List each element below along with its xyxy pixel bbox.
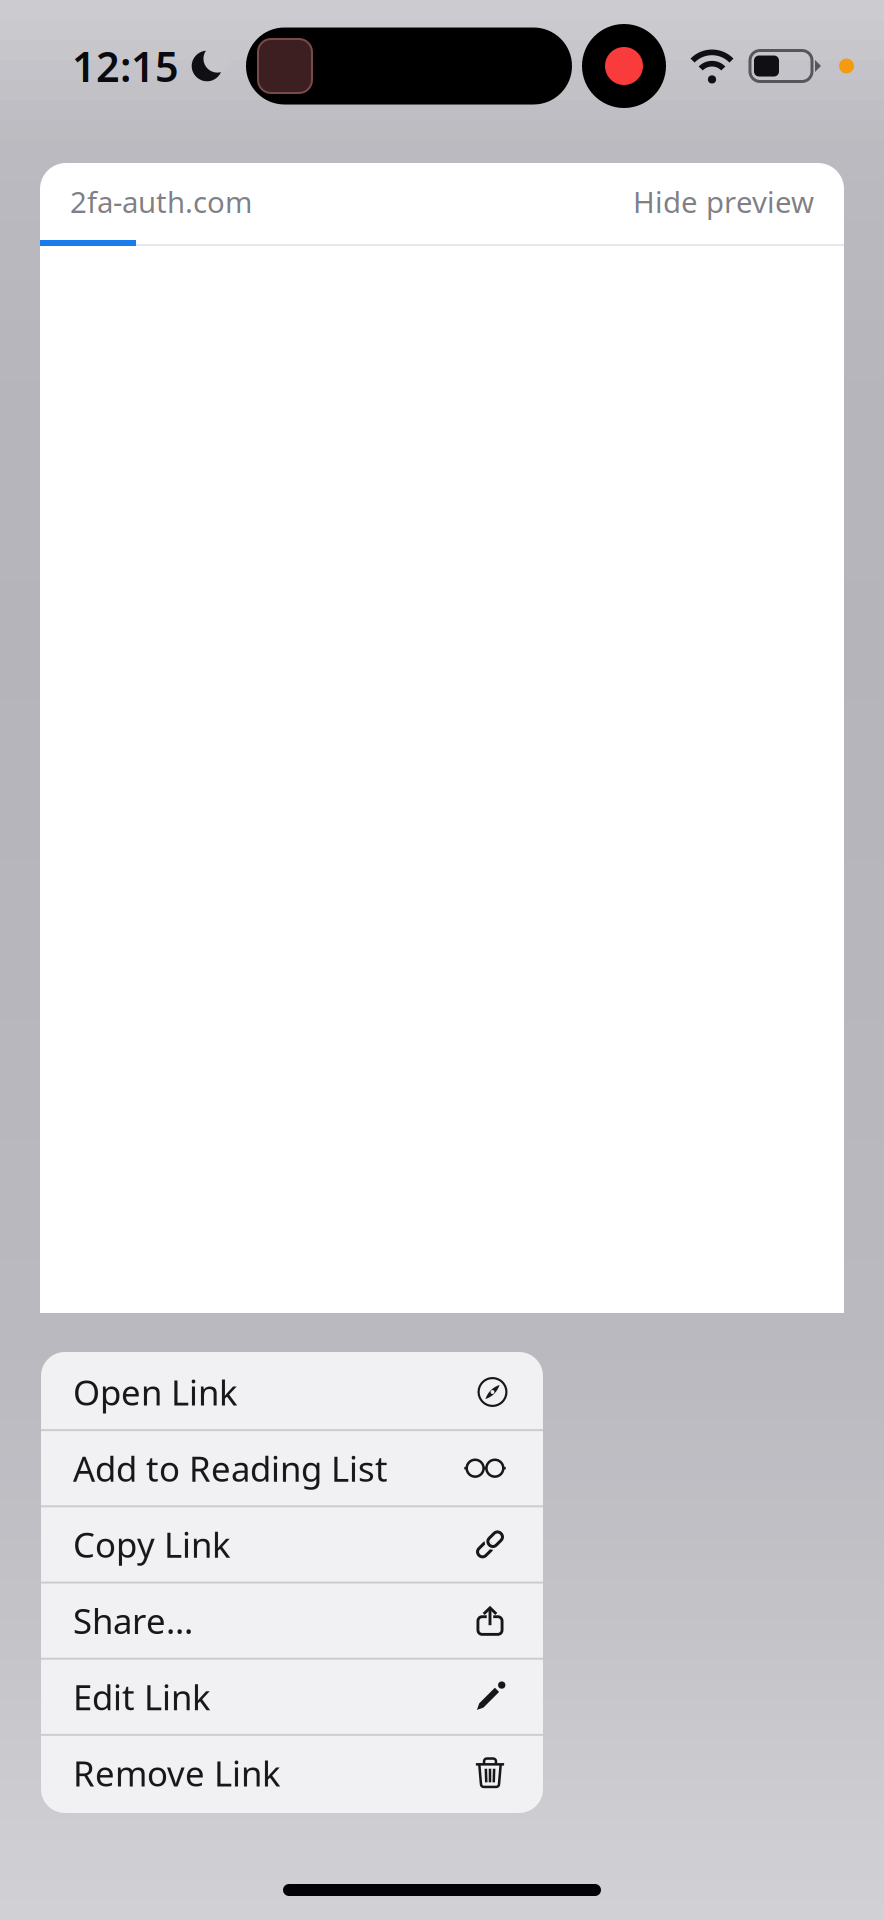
button[interactable]: Add to Reading List <box>41 1431 543 1505</box>
staticText: Remove Link <box>73 1750 281 1796</box>
staticText: Copy Link <box>73 1521 231 1567</box>
button[interactable]: Open Link <box>41 1355 543 1429</box>
staticText: Share... <box>73 1598 193 1644</box>
button[interactable]: Share... <box>41 1583 543 1658</box>
staticText: 12:15 <box>72 39 179 93</box>
button[interactable]: Copy Link <box>41 1507 543 1581</box>
button[interactable]: Edit Link <box>41 1660 543 1734</box>
staticText: Edit Link <box>73 1674 211 1720</box>
staticText: Hide preview <box>633 182 814 221</box>
button[interactable]: Remove Link <box>41 1736 543 1810</box>
staticText: Add to Reading List <box>73 1445 388 1491</box>
button[interactable]: Hide preview <box>633 182 814 221</box>
staticText: Open Link <box>73 1369 238 1415</box>
staticText: 2fa-auth.com <box>70 182 252 221</box>
